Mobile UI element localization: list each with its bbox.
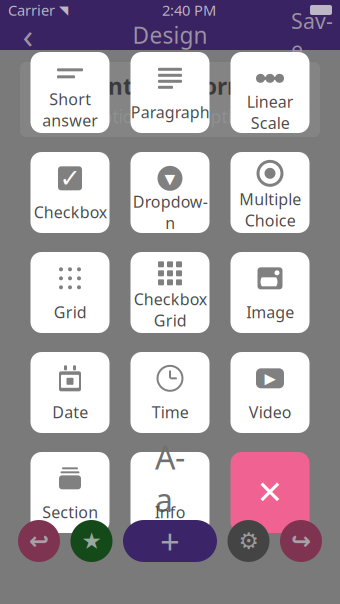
button[interactable]: Undo — [18, 520, 60, 562]
staticText: + — [160, 518, 180, 564]
staticText: Checkbox — [33, 201, 106, 223]
staticText: ◥ — [59, 3, 68, 17]
button[interactable]: Time — [130, 352, 209, 433]
staticText: Multiple Choice — [239, 188, 301, 231]
button[interactable]: Multiple Choice — [230, 152, 309, 233]
button[interactable]: Back — [6, 20, 50, 50]
button[interactable]: Add — [123, 520, 217, 562]
staticText: ▶ — [264, 370, 275, 387]
button[interactable]: Checkbox Grid — [130, 252, 209, 333]
staticText: Grid — [53, 301, 86, 323]
button[interactable]: Date — [30, 352, 109, 433]
button[interactable]: ▾ — [130, 152, 209, 233]
staticText: 2:40 PM — [162, 0, 216, 20]
staticText: Save — [291, 7, 333, 63]
staticText: ★ — [81, 528, 101, 554]
staticText: Untitled Form — [91, 71, 249, 101]
button[interactable]: Paragraph — [130, 52, 209, 133]
button[interactable]: Grid — [30, 252, 109, 333]
staticText: Design — [132, 20, 207, 50]
staticText: Time — [151, 401, 188, 423]
staticText: ✕ — [256, 474, 283, 511]
button[interactable]: Image — [230, 252, 309, 333]
staticText: Info — [154, 501, 185, 523]
button[interactable]: Share — [280, 520, 322, 562]
staticText: ↪ — [291, 527, 311, 555]
staticText: ✓ — [59, 164, 80, 193]
button[interactable]: Favorite — [70, 520, 112, 562]
button[interactable]: ✓ — [30, 152, 109, 233]
button[interactable]: Close — [230, 452, 309, 533]
staticText: ↩ — [29, 527, 49, 555]
button[interactable]: Save — [290, 20, 334, 50]
button[interactable]: Linear Scale — [230, 52, 309, 133]
staticText: Paragraph — [130, 101, 209, 123]
staticText: Video — [248, 401, 291, 423]
staticText: Section — [42, 501, 98, 523]
button[interactable]: Section — [30, 452, 109, 533]
button[interactable]: ▶ — [230, 352, 309, 433]
staticText: Carrier — [8, 0, 55, 20]
button[interactable]: Settings — [227, 520, 269, 562]
staticText: Date — [52, 401, 88, 423]
staticText: ⚙ — [238, 528, 258, 554]
button[interactable]: Short answer — [30, 52, 109, 133]
staticText: Dropdown — [132, 191, 207, 233]
staticText: Aa — [155, 436, 185, 521]
staticText: ▾ — [164, 166, 175, 190]
staticText: (Optional description) — [82, 105, 257, 128]
staticText: Short answer — [42, 88, 98, 131]
staticText: Checkbox Grid — [133, 288, 206, 331]
button[interactable]: Aa — [130, 452, 209, 533]
staticText: Linear Scale — [246, 91, 293, 133]
staticText: ‹ — [22, 12, 33, 58]
staticText: Image — [246, 301, 294, 323]
